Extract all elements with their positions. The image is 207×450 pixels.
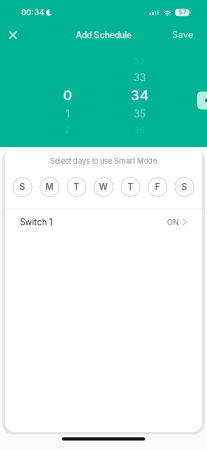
button[interactable]: M [40,177,59,196]
staticText: 33 [133,71,145,84]
staticText: ON [167,217,179,227]
button[interactable]: S [175,177,194,196]
staticText: 00:34 [21,8,44,17]
staticText: Save [172,30,193,40]
staticText: S [181,182,187,192]
button[interactable]: F [148,177,167,196]
button[interactable]: S [13,177,32,196]
staticText: Switch 1 [20,217,52,227]
staticText: W [99,182,108,192]
staticText: T [73,182,79,192]
staticText: 2 [65,126,70,135]
staticText: Add Schedule [75,30,131,40]
button[interactable]: Options [197,91,207,109]
staticText: 35 [133,108,145,120]
staticText: 0 [63,87,72,103]
button[interactable]: Save [167,25,204,45]
button[interactable]: T [121,177,140,196]
staticText: 36 [134,126,144,135]
staticText: 32 [134,57,144,66]
staticText: T [127,182,133,192]
button[interactable]: Close [3,25,23,45]
staticText: 1 [65,108,69,120]
staticText: S [19,182,25,192]
staticText: F [155,182,160,192]
button[interactable]: W [94,177,113,196]
button[interactable]: Switch 1 [5,209,202,236]
staticText: Select days to use Smart Mode [50,156,157,165]
staticText: 34 [130,87,148,103]
staticText: 57 [179,9,186,16]
staticText: M [45,182,53,192]
button[interactable]: T [67,177,86,196]
